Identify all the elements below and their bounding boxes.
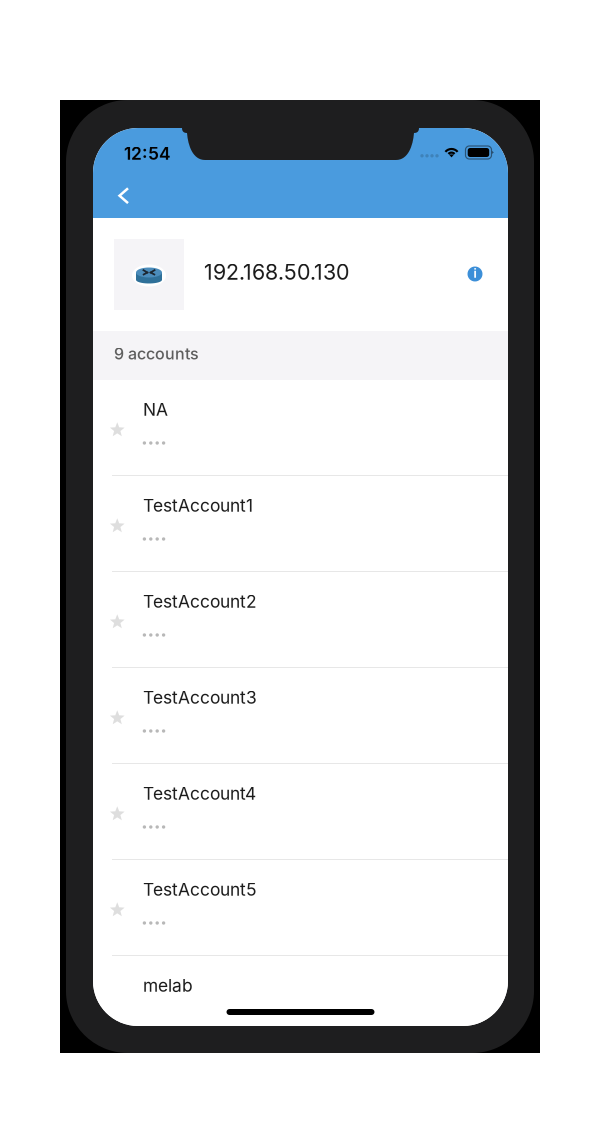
- staticText: melab: [143, 975, 193, 996]
- staticText: TestAccount4: [143, 783, 256, 804]
- staticText: TestAccount2: [143, 591, 257, 612]
- button[interactable]: Information: [453, 252, 497, 296]
- staticText: NA: [143, 399, 168, 420]
- staticText: 9 accounts: [114, 344, 199, 363]
- button[interactable]: TestAccount1: [93, 476, 508, 572]
- staticText: TestAccount5: [143, 879, 257, 900]
- button[interactable]: melab: [93, 956, 508, 1052]
- button[interactable]: TestAccount3: [93, 668, 508, 764]
- button[interactable]: TestAccount2: [93, 572, 508, 668]
- staticText: 192.168.50.130: [204, 259, 349, 285]
- staticText: i: [473, 266, 476, 281]
- button[interactable]: TestAccount5: [93, 860, 508, 956]
- button[interactable]: TestAccount4: [93, 764, 508, 860]
- button[interactable]: NA: [93, 380, 508, 476]
- button[interactable]: Back: [104, 174, 148, 218]
- staticText: TestAccount1: [143, 495, 253, 516]
- staticText: TestAccount3: [143, 687, 257, 708]
- staticText: 12:54: [124, 143, 171, 164]
